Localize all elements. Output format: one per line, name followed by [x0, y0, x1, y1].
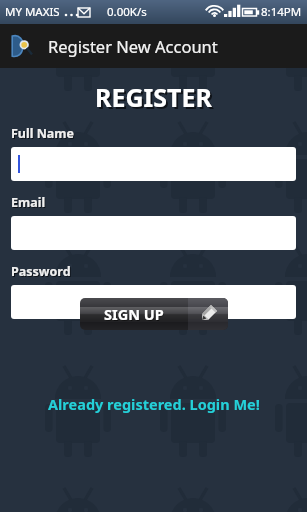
staticText: Already registered. Login Me! [48, 394, 260, 414]
staticText: REGISTER [97, 82, 214, 116]
staticText: Email [12, 195, 47, 212]
staticText: REGISTER [95, 80, 212, 114]
staticText: SIGN UP [104, 304, 164, 324]
staticText: 0.00K/s [107, 4, 147, 20]
other: Edit [188, 298, 228, 330]
button[interactable]: Already registered. Login Me! [40, 390, 268, 418]
button[interactable]: SIGN UP [80, 298, 228, 330]
staticText: 8:14PM [261, 4, 302, 20]
staticText: Email [11, 194, 46, 211]
staticText: MY MAXIS [5, 4, 60, 20]
staticText: Full Name [12, 126, 75, 143]
other: App icon [8, 31, 38, 61]
staticText: Password [12, 264, 72, 281]
button[interactable]: App icon [0, 24, 307, 68]
staticText: Register New Account [48, 35, 218, 57]
staticText: SIGN UP [105, 305, 165, 325]
button[interactable] [11, 147, 296, 181]
button[interactable] [11, 216, 296, 250]
staticText: Password [11, 263, 71, 280]
button[interactable] [11, 285, 296, 319]
staticText: Full Name [11, 125, 74, 142]
